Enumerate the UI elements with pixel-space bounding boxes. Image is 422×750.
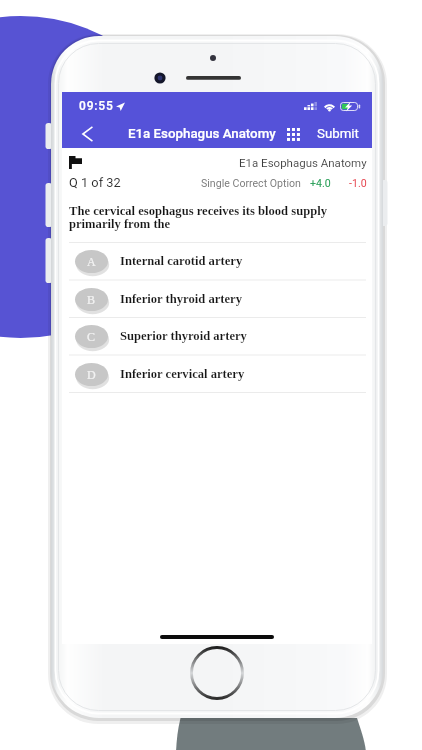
button[interactable]: A: [62, 242, 372, 280]
staticText: 09:55: [79, 99, 114, 113]
button[interactable]: C: [62, 317, 372, 355]
button[interactable]: Question grid: [276, 120, 311, 148]
staticText: Submit: [317, 126, 359, 142]
staticText: Q 1 of 32: [69, 175, 121, 190]
staticText: Internal carotid artery: [120, 254, 243, 268]
staticText: +4.0: [310, 177, 331, 189]
staticText: B: [87, 293, 96, 306]
staticText: The cervical esophagus receives its bloo…: [69, 204, 362, 230]
staticText: -1.0: [349, 177, 367, 189]
staticText: Inferior cervical artery: [120, 367, 245, 381]
button[interactable]: B: [62, 280, 372, 318]
staticText: D: [87, 368, 96, 381]
staticText: A: [87, 255, 96, 268]
staticText: Inferior thyroid artery: [120, 292, 242, 306]
button[interactable]: Submit: [311, 120, 364, 148]
staticText: Single Correct Option: [201, 177, 301, 189]
button[interactable]: Back: [62, 120, 112, 148]
staticText: Superior thyroid artery: [120, 329, 247, 343]
staticText: C: [87, 330, 96, 343]
staticText: E1a Esophagus Anatomy: [239, 156, 367, 169]
staticText: E1a Esophagus Anatomy: [128, 126, 276, 142]
button[interactable]: D: [62, 355, 372, 393]
